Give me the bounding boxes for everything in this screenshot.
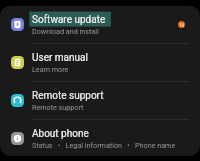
staticText: User manual bbox=[32, 52, 88, 64]
staticText: Download and install bbox=[32, 27, 99, 35]
button[interactable]: Software update bbox=[0, 6, 200, 43]
staticText: Software update bbox=[32, 14, 106, 26]
staticText: About phone bbox=[32, 128, 89, 140]
staticText: Remote support bbox=[32, 103, 84, 111]
button[interactable]: Remote support bbox=[0, 82, 200, 119]
button[interactable]: User manual bbox=[0, 44, 200, 81]
staticText: Learn more bbox=[32, 65, 69, 73]
other: New update available bbox=[178, 21, 185, 28]
staticText: N bbox=[180, 22, 184, 28]
staticText: Remote support bbox=[32, 90, 104, 102]
staticText: Status • Legal information • Phone name bbox=[32, 141, 176, 149]
button[interactable]: About phone bbox=[0, 120, 200, 156]
